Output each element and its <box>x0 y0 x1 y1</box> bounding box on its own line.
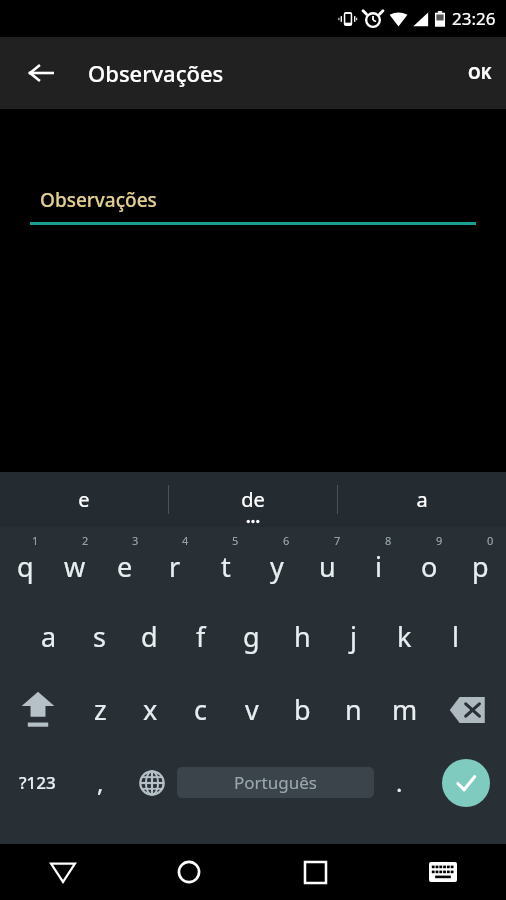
button[interactable]: n <box>328 673 379 746</box>
button[interactable]: m <box>379 673 430 746</box>
button[interactable]: z <box>75 673 125 746</box>
staticText: Português <box>234 771 317 794</box>
staticText: Observações <box>40 187 157 213</box>
staticText: ?123 <box>19 771 56 794</box>
button[interactable]: Change language <box>126 746 177 819</box>
staticText: OK <box>468 62 492 84</box>
staticText: a <box>416 486 428 513</box>
staticText: . <box>396 766 403 799</box>
staticText: l <box>452 618 459 655</box>
staticText: i <box>375 548 382 585</box>
button[interactable]: v <box>226 673 277 746</box>
staticText: 5 <box>232 533 239 548</box>
staticText: r <box>169 548 181 585</box>
button[interactable]: 8 <box>353 527 404 600</box>
button[interactable]: Português <box>177 767 374 798</box>
staticText: h <box>294 618 311 655</box>
button[interactable]: a <box>24 600 74 673</box>
staticText: t <box>221 548 231 585</box>
staticText: m <box>392 691 418 728</box>
staticText: Observações <box>88 58 224 88</box>
button[interactable]: b <box>277 673 328 746</box>
staticText: 4 <box>182 533 189 548</box>
button[interactable]: OK <box>468 43 492 103</box>
button[interactable]: Back <box>18 50 64 96</box>
staticText: u <box>319 548 336 585</box>
staticText: 2 <box>82 533 89 548</box>
staticText: v <box>245 691 259 728</box>
staticText: s <box>93 618 106 655</box>
staticText: j <box>350 618 357 655</box>
button[interactable]: s <box>74 600 124 673</box>
button[interactable]: Observações <box>30 187 476 225</box>
button[interactable]: x <box>125 673 175 746</box>
button[interactable]: c <box>175 673 226 746</box>
staticText: n <box>345 691 362 728</box>
button[interactable]: Back <box>0 844 126 900</box>
staticText: 8 <box>385 533 392 548</box>
button[interactable]: 1 <box>0 527 50 600</box>
staticText: b <box>294 691 311 728</box>
button[interactable]: k <box>379 600 430 673</box>
staticText: 3 <box>132 533 139 548</box>
staticText: x <box>143 691 158 728</box>
staticText: p <box>472 548 489 585</box>
staticText: q <box>17 548 34 585</box>
button[interactable]: 4 <box>150 527 200 600</box>
staticText: w <box>64 548 86 585</box>
button[interactable]: Shift <box>0 673 75 746</box>
button[interactable]: h <box>277 600 328 673</box>
button[interactable]: de <box>169 472 337 527</box>
staticText: d <box>141 618 158 655</box>
staticText: o <box>421 548 438 585</box>
button[interactable]: 7 <box>302 527 353 600</box>
button[interactable]: j <box>328 600 379 673</box>
staticText: g <box>243 618 260 655</box>
button[interactable]: , <box>75 746 126 819</box>
button[interactable]: a <box>338 472 506 527</box>
staticText: , <box>97 766 104 799</box>
button[interactable]: 3 <box>100 527 150 600</box>
staticText: 6 <box>283 533 290 548</box>
staticText: a <box>41 618 57 655</box>
button[interactable]: Home <box>126 844 252 900</box>
button[interactable]: 9 <box>404 527 455 600</box>
staticText: de <box>241 486 265 513</box>
button[interactable]: 5 <box>200 527 251 600</box>
staticText: z <box>94 691 107 728</box>
button[interactable]: . <box>374 746 425 819</box>
button[interactable]: Enter <box>425 746 506 819</box>
button[interactable]: Switch keyboard <box>379 844 506 900</box>
button[interactable]: 0 <box>455 527 506 600</box>
staticText: c <box>194 691 207 728</box>
staticText: e <box>117 548 133 585</box>
staticText: 9 <box>436 533 443 548</box>
button[interactable]: 2 <box>50 527 100 600</box>
staticText: 7 <box>334 533 341 548</box>
staticText: 23:26 <box>452 7 496 30</box>
staticText: f <box>196 618 206 655</box>
button[interactable]: Backspace <box>430 673 506 746</box>
button[interactable]: g <box>226 600 277 673</box>
button[interactable]: f <box>175 600 226 673</box>
button[interactable]: d <box>124 600 175 673</box>
staticText: y <box>270 548 284 585</box>
button[interactable]: 6 <box>251 527 302 600</box>
staticText: 1 <box>32 533 39 548</box>
button[interactable]: l <box>430 600 481 673</box>
button[interactable]: e <box>0 472 168 527</box>
staticText: 0 <box>487 533 494 548</box>
button[interactable]: Recents <box>252 844 379 900</box>
staticText: k <box>397 618 412 655</box>
button[interactable]: ?123 <box>0 746 75 819</box>
staticText: e <box>78 486 90 513</box>
